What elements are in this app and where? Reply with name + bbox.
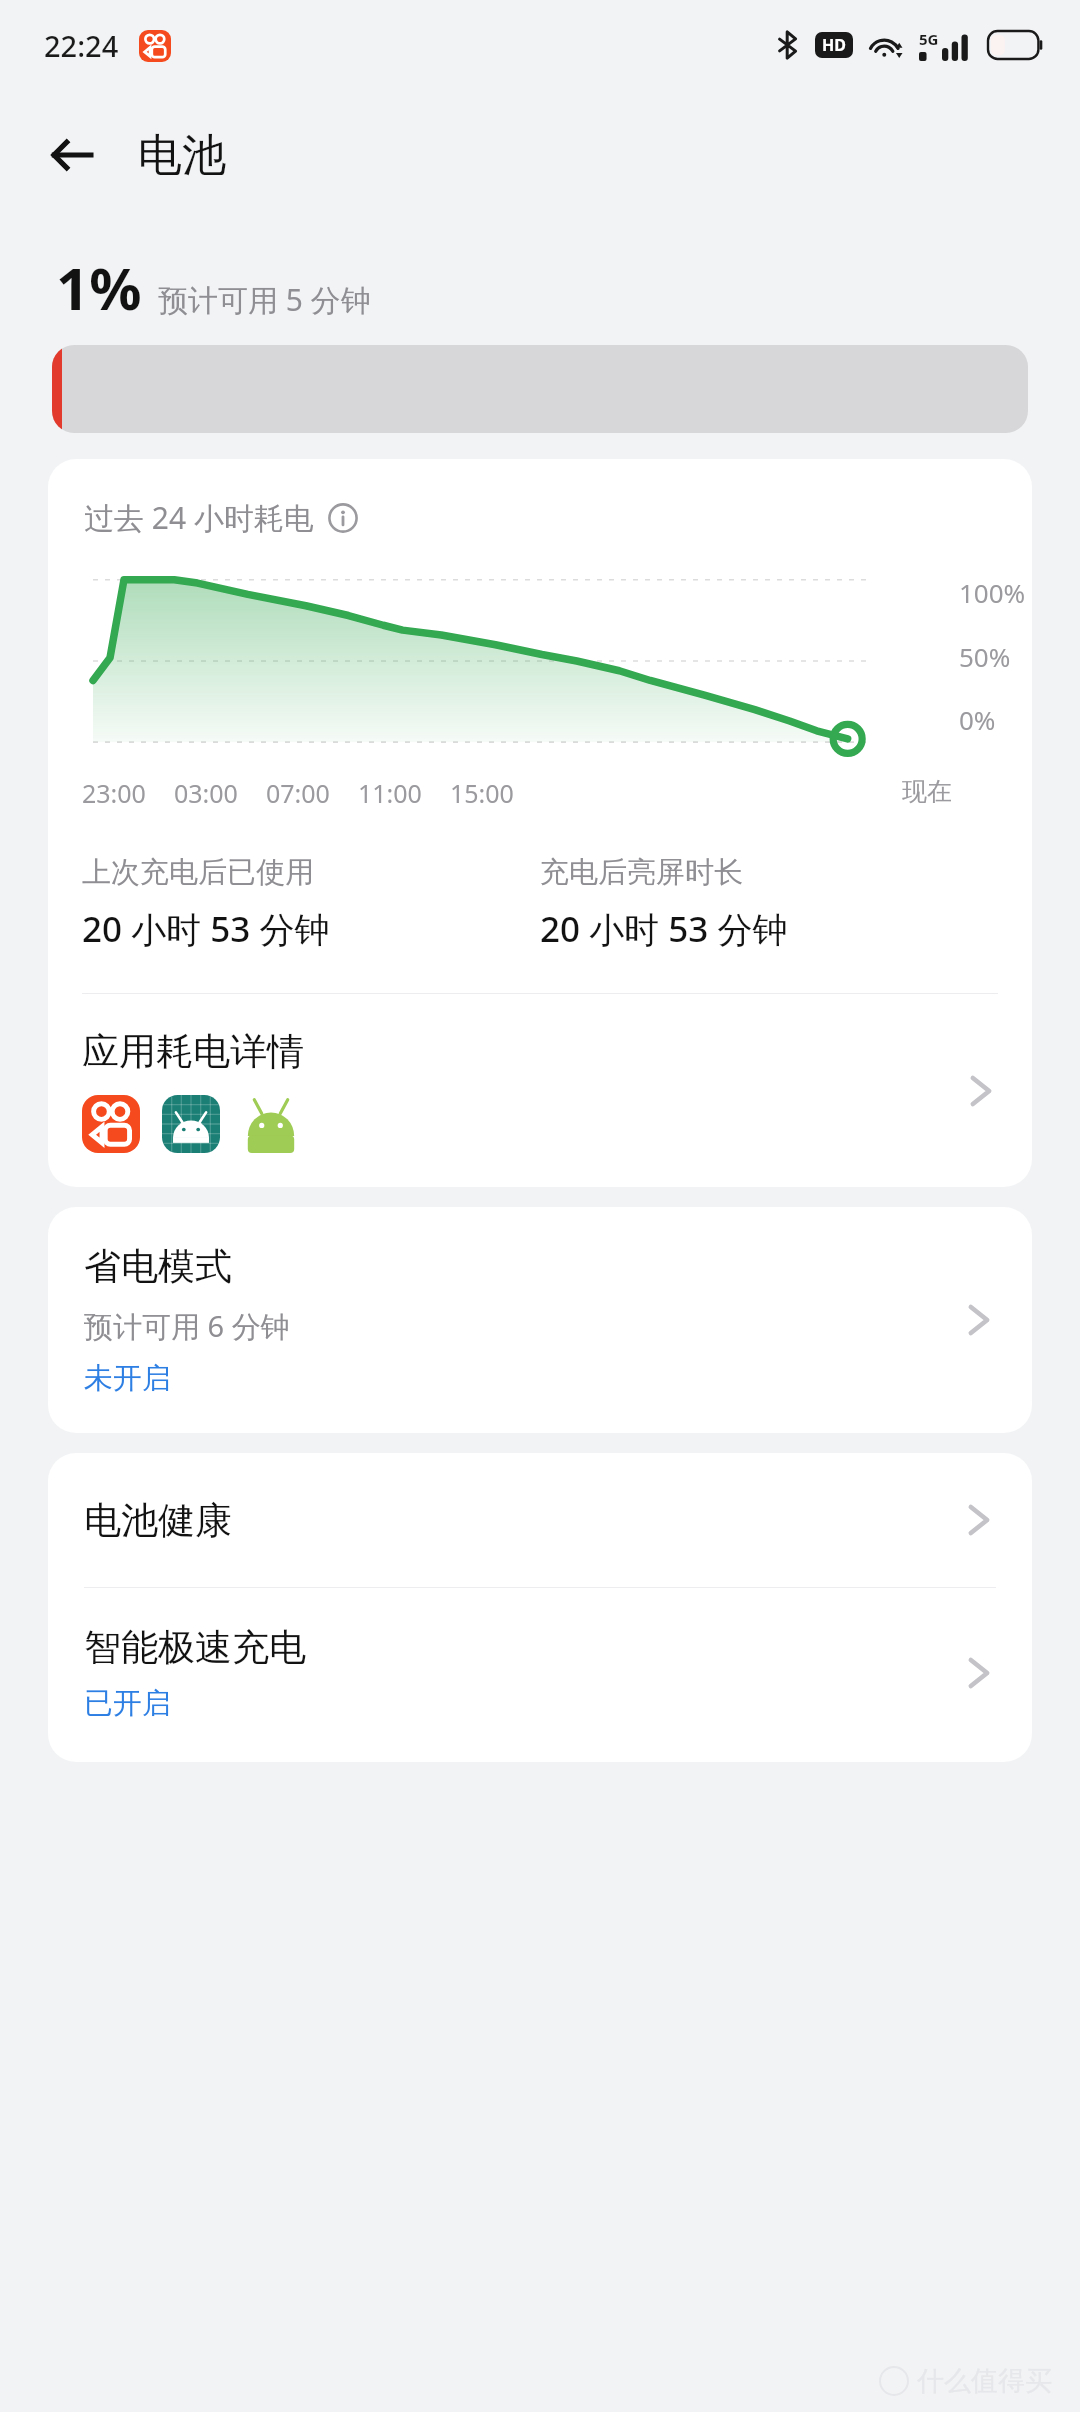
staticText: 上次充电后已使用 [82, 854, 314, 891]
staticText: 应用耗电详情 [82, 1028, 304, 1075]
button[interactable]: 应用耗电详情 [48, 994, 1032, 1187]
staticText: 11:00 [358, 776, 422, 810]
staticText: 预计可用 6 分钟 [84, 1306, 290, 1346]
staticText: 未开启 [84, 1360, 171, 1397]
staticText: 智能极速充电 [84, 1624, 306, 1671]
staticText: 电池 [138, 128, 226, 183]
staticText: 22:24 [44, 26, 119, 65]
staticText: 23:00 [82, 776, 146, 810]
staticText: 充电后亮屏时长 [540, 854, 743, 891]
staticText: 5G [919, 29, 939, 49]
staticText: 现在 [902, 776, 952, 807]
staticText: 03:00 [174, 776, 238, 810]
staticText: 省电模式 [84, 1243, 232, 1290]
button[interactable]: 智能极速充电 [48, 1588, 1032, 1762]
staticText: 什么值得买 [917, 2364, 1052, 2398]
staticText: 1% [56, 248, 142, 327]
staticText: 已开启 [84, 1685, 171, 1722]
staticText: 0% [959, 702, 996, 737]
button[interactable]: Back [34, 117, 110, 193]
button[interactable]: 省电模式 [48, 1207, 1032, 1433]
staticText: 电池健康 [84, 1497, 962, 1544]
staticText: 50% [959, 639, 1011, 674]
button[interactable]: 电池健康 [48, 1453, 1032, 1587]
staticText: 20 小时 53 分钟 [540, 905, 788, 953]
staticText: 过去 24 小时耗电 [84, 497, 314, 538]
staticText: 07:00 [266, 776, 330, 810]
staticText: HD [822, 34, 846, 56]
staticText: 预计可用 5 分钟 [158, 279, 371, 320]
staticText: 20 小时 53 分钟 [82, 905, 330, 953]
staticText: 15:00 [450, 776, 514, 810]
staticText: 100% [959, 575, 1026, 610]
